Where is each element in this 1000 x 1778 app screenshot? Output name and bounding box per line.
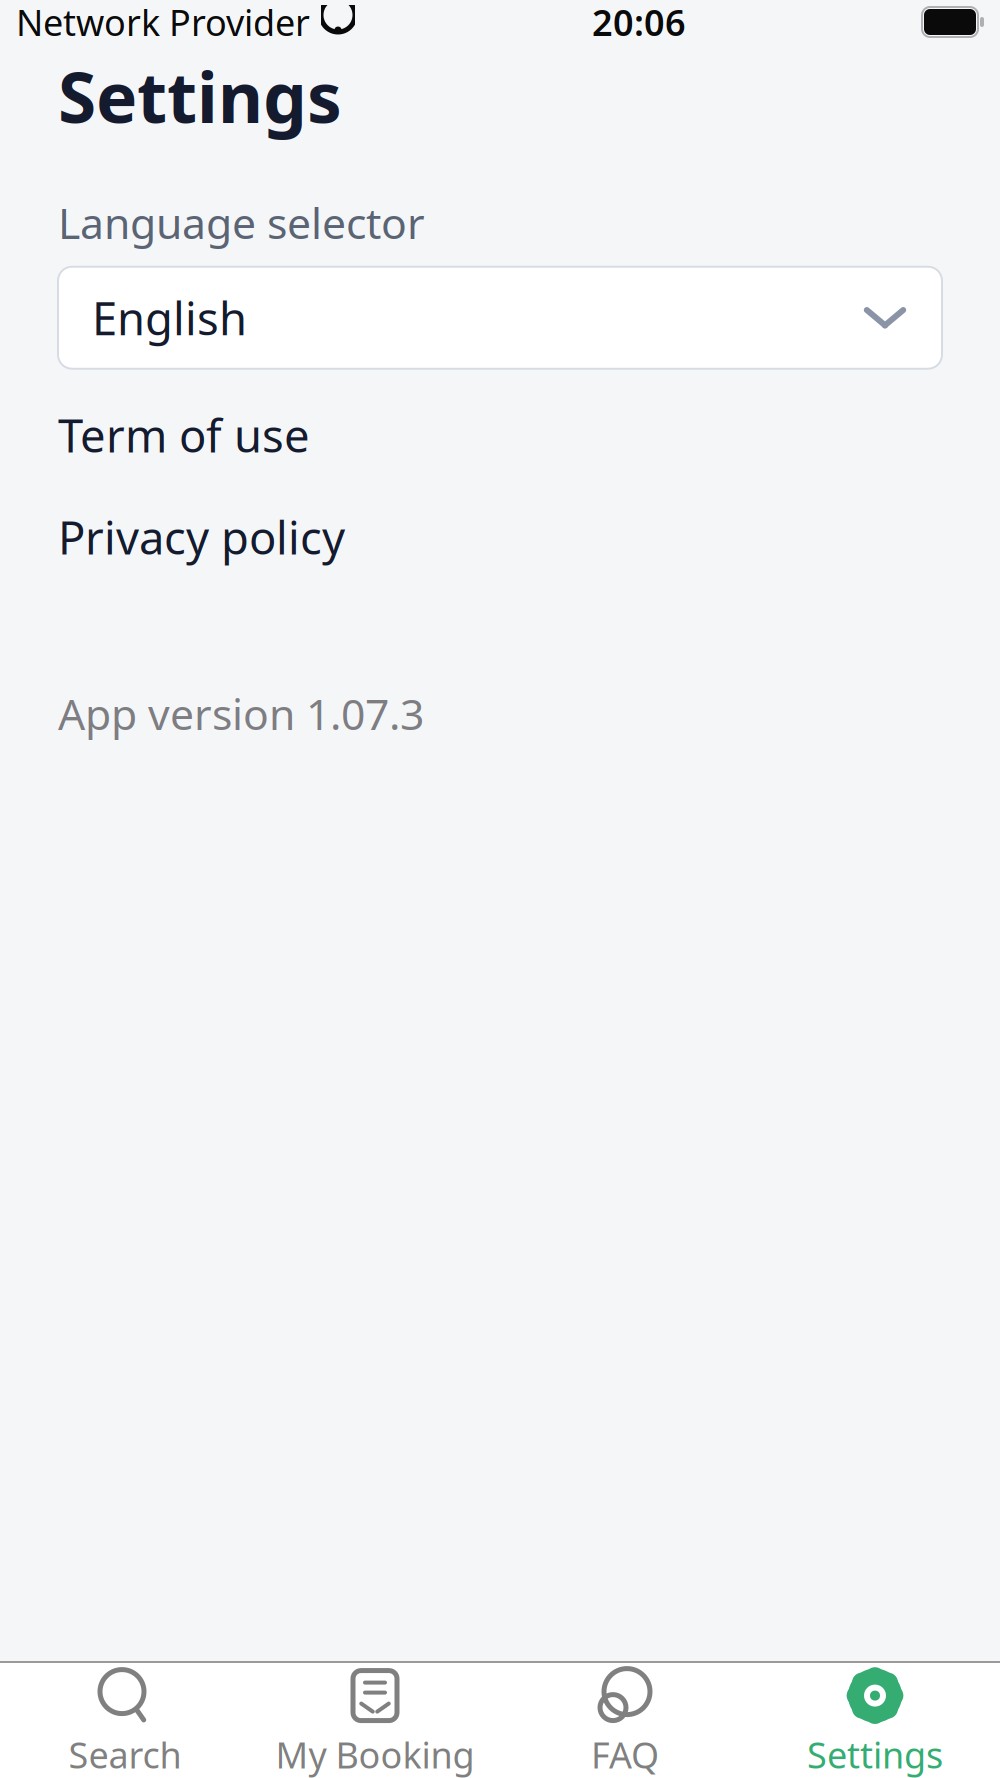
button[interactable]: English xyxy=(58,267,942,369)
button[interactable]: My Booking xyxy=(250,1653,500,1778)
staticText: Search xyxy=(68,1731,181,1778)
button[interactable]: FAQ xyxy=(500,1653,750,1778)
staticText: English xyxy=(92,288,247,348)
staticText: FAQ xyxy=(591,1731,659,1778)
button[interactable]: Term of use xyxy=(0,397,1000,473)
staticText: Network Provider xyxy=(16,0,310,46)
staticText: 20:06 xyxy=(592,0,686,46)
button[interactable]: Settings xyxy=(750,1653,1000,1778)
button[interactable]: Privacy policy xyxy=(0,499,1000,575)
staticText: Settings xyxy=(807,1731,943,1778)
button[interactable]: Search xyxy=(0,1653,250,1778)
staticText: Language selector xyxy=(58,194,425,251)
staticText: App version 1.07.3 xyxy=(58,685,424,742)
staticText: Settings xyxy=(58,50,342,142)
staticText: My Booking xyxy=(275,1731,474,1778)
staticText: Term of use xyxy=(58,405,310,465)
staticText: Privacy policy xyxy=(58,507,345,567)
